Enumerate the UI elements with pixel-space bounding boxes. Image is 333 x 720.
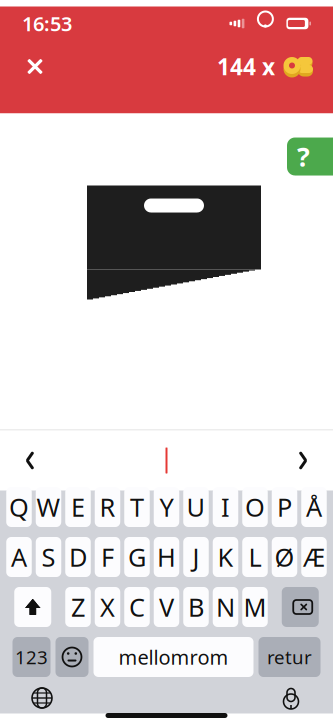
button[interactable]: S xyxy=(36,537,61,577)
staticText: K xyxy=(217,540,233,574)
staticText: Æ xyxy=(303,540,325,574)
button[interactable]: R xyxy=(95,487,120,527)
button[interactable]: J xyxy=(183,537,209,577)
button[interactable]: Shift xyxy=(14,587,51,627)
staticText: ? xyxy=(297,139,310,174)
button[interactable]: E xyxy=(65,487,91,527)
button[interactable]: retur xyxy=(258,637,320,677)
staticText: H xyxy=(157,540,176,574)
button[interactable]: U xyxy=(183,487,209,527)
staticText: G xyxy=(128,540,146,574)
button[interactable]: W xyxy=(36,487,61,527)
button[interactable]: L xyxy=(242,537,268,577)
button[interactable]: Close xyxy=(15,46,55,86)
button[interactable]: I xyxy=(213,487,238,527)
staticText: R xyxy=(99,490,115,524)
button[interactable]: C xyxy=(124,587,150,627)
staticText: J xyxy=(192,540,199,574)
button[interactable]: P xyxy=(272,487,297,527)
staticText: 16:53 xyxy=(22,10,72,37)
staticText: mellomrom xyxy=(118,644,228,670)
button[interactable]: Emoji xyxy=(55,637,88,677)
button[interactable]: K xyxy=(213,537,238,577)
staticText: Ø xyxy=(274,540,294,574)
button[interactable]: A xyxy=(6,537,32,577)
button[interactable]: Ø xyxy=(272,537,297,577)
button[interactable]: Next keyboard xyxy=(22,683,62,713)
button[interactable]: O xyxy=(242,487,268,527)
button[interactable]: N xyxy=(213,587,238,627)
button[interactable]: Dictation xyxy=(271,683,311,713)
button[interactable]: Y xyxy=(154,487,179,527)
button[interactable]: Z xyxy=(65,587,91,627)
staticText: Z xyxy=(71,590,85,624)
staticText: D xyxy=(69,540,87,574)
staticText: C xyxy=(129,590,145,624)
button[interactable]: T xyxy=(124,487,150,527)
button[interactable]: H xyxy=(154,537,179,577)
button[interactable]: Next xyxy=(281,438,325,482)
button[interactable]: mellomrom xyxy=(93,637,253,677)
staticText: N xyxy=(216,590,235,624)
button[interactable]: Å xyxy=(301,487,327,527)
staticText: B xyxy=(188,590,204,624)
button[interactable]: X xyxy=(95,587,120,627)
button[interactable]: Q xyxy=(6,487,32,527)
staticText: Q xyxy=(9,490,29,524)
button[interactable]: 123 xyxy=(12,637,50,677)
button[interactable]: D xyxy=(65,537,91,577)
staticText: A xyxy=(11,540,27,574)
staticText: S xyxy=(41,540,55,574)
staticText: X xyxy=(100,590,115,624)
staticText: 144 x xyxy=(217,51,275,81)
staticText: L xyxy=(248,540,261,574)
button[interactable]: F xyxy=(95,537,120,577)
staticText: P xyxy=(277,490,292,524)
button[interactable]: Delete xyxy=(282,587,319,627)
button[interactable]: Previous xyxy=(8,438,52,482)
staticText: V xyxy=(159,590,174,624)
staticText: W xyxy=(36,490,60,524)
staticText: M xyxy=(243,590,266,624)
staticText: I xyxy=(221,490,230,524)
button[interactable]: Æ xyxy=(301,537,327,577)
button[interactable]: M xyxy=(242,587,268,627)
button[interactable]: B xyxy=(183,587,209,627)
button[interactable]: 144 coins xyxy=(213,46,318,86)
staticText: Å xyxy=(306,490,322,524)
staticText: T xyxy=(130,490,144,524)
staticText: E xyxy=(71,490,85,524)
button[interactable]: Help xyxy=(287,137,333,175)
staticText: 123 xyxy=(15,645,48,669)
staticText: F xyxy=(101,540,114,574)
button[interactable]: G xyxy=(124,537,150,577)
button[interactable]: V xyxy=(154,587,179,627)
staticText: O xyxy=(245,490,265,524)
staticText: retur xyxy=(267,645,312,669)
staticText: U xyxy=(186,490,205,524)
staticText: Y xyxy=(159,490,173,524)
